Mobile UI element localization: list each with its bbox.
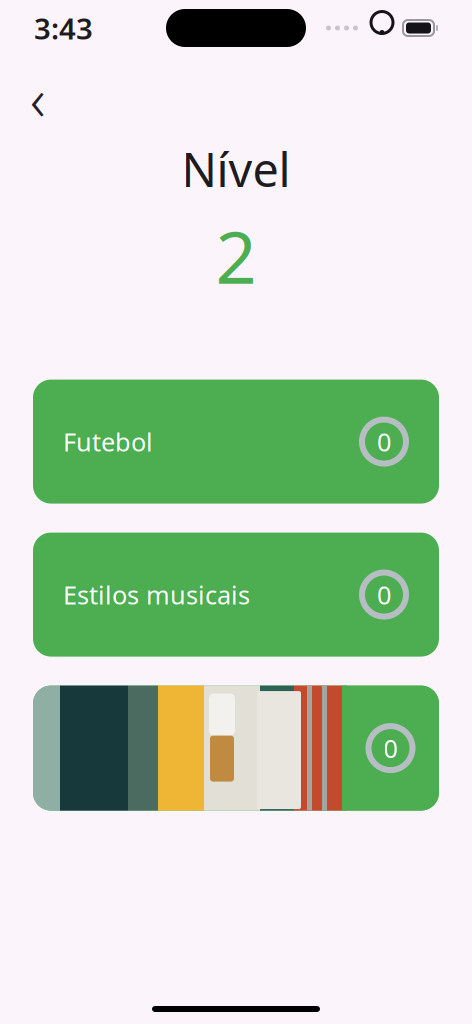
staticText: 0	[377, 425, 391, 458]
button[interactable]: Pintura	[33, 686, 439, 811]
staticText: Estilos musicais	[63, 578, 250, 611]
button[interactable]: Voltar	[14, 74, 62, 122]
staticText: 3:43	[34, 8, 93, 47]
staticText: Nível	[181, 138, 290, 200]
staticText: ‹	[30, 59, 46, 137]
staticText: Futebol	[63, 425, 153, 458]
staticText: 2	[215, 208, 256, 304]
button[interactable]: Futebol	[33, 380, 439, 504]
button[interactable]: Estilos musicais	[33, 533, 439, 657]
staticText: 0	[377, 578, 391, 611]
staticText: 0	[383, 731, 397, 765]
